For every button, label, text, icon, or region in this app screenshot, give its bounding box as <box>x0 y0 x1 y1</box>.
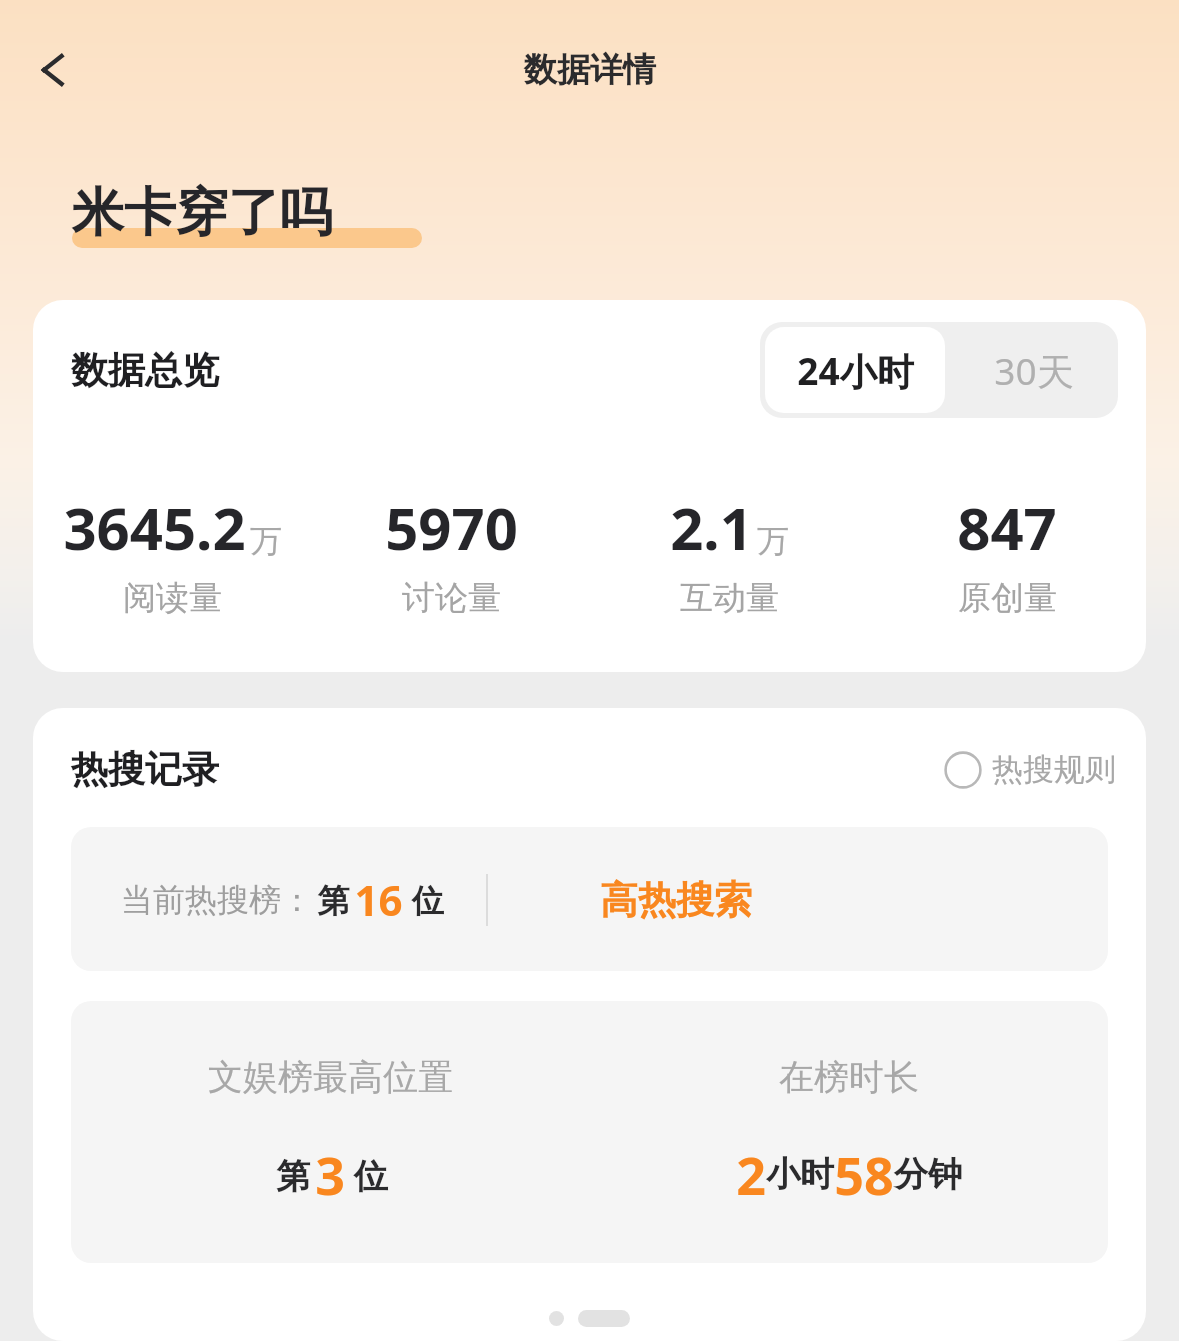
staticText: 58 <box>834 1139 894 1210</box>
staticText: 数据详情 <box>524 49 656 91</box>
staticText: 热搜记录 <box>71 746 219 793</box>
button[interactable]: Back <box>14 30 94 110</box>
staticText: 文娱榜最高位置 <box>208 1055 453 1099</box>
staticText: 位 <box>403 878 444 922</box>
staticText: 数据总览 <box>71 347 219 394</box>
staticText: 万 <box>757 521 789 561</box>
staticText: 3 <box>315 1139 345 1210</box>
staticText: 位 <box>345 1152 388 1198</box>
staticText: 2.1 <box>670 488 753 567</box>
staticText: 5970 <box>385 488 518 567</box>
staticText: 2 <box>736 1139 766 1210</box>
staticText: 30天 <box>994 345 1074 396</box>
staticText: 3645.2 <box>63 488 246 567</box>
staticText: 阅读量 <box>123 577 222 619</box>
staticText: 讨论量 <box>402 577 501 619</box>
button[interactable]: 30天 <box>950 322 1118 418</box>
staticText: 热搜规则 <box>992 750 1116 789</box>
staticText: 原创量 <box>958 577 1057 619</box>
button[interactable]: 当前热搜榜： <box>71 827 1108 971</box>
staticText: 847 <box>957 488 1057 567</box>
staticText: 分钟 <box>894 1153 962 1196</box>
staticText: 第 <box>272 1152 315 1198</box>
staticText: 当前热搜榜： <box>121 880 313 920</box>
staticText: 16 <box>354 871 403 928</box>
staticText: 互动量 <box>680 577 779 619</box>
staticText: 24小时 <box>797 345 914 396</box>
staticText: 小时 <box>766 1153 834 1196</box>
staticText: 在榜时长 <box>779 1055 919 1099</box>
staticText: 万 <box>250 521 282 561</box>
staticText: 高热搜索 <box>600 876 752 924</box>
button[interactable]: 24小时 <box>765 327 945 413</box>
staticText: 米卡穿了吗 <box>72 180 332 246</box>
button[interactable]: 热搜规则 <box>944 750 1116 789</box>
staticText: 第 <box>313 878 354 922</box>
